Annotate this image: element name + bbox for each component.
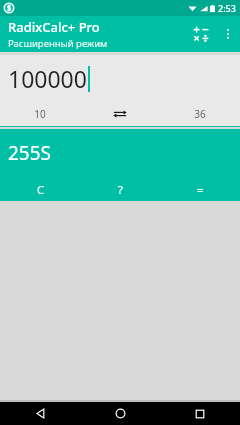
staticText: C [37, 182, 44, 197]
button[interactable]: 36 [160, 102, 240, 126]
button[interactable]: Home [80, 402, 160, 425]
button[interactable]: C [0, 177, 80, 201]
staticText: RadixCalc+ Pro [8, 18, 100, 36]
staticText: 100000 [8, 63, 87, 94]
button[interactable]: Recents [160, 402, 240, 425]
staticText: = [197, 182, 204, 197]
button[interactable]: Back [0, 402, 80, 425]
staticText: 255S [8, 140, 52, 166]
button[interactable]: 100000 [0, 55, 240, 102]
staticText: 36 [194, 107, 206, 121]
button[interactable]: More options [216, 22, 240, 46]
staticText: ? [118, 182, 123, 197]
button[interactable]: = [160, 177, 240, 201]
staticText: 10 [34, 107, 46, 121]
button[interactable]: 255S [0, 129, 240, 177]
button[interactable]: Operations [186, 19, 216, 49]
staticText: 2:53 [218, 2, 236, 14]
button[interactable]: Swap bases [80, 102, 160, 126]
button[interactable]: ? [80, 177, 160, 201]
staticText: Расширенный режим [8, 37, 108, 50]
button[interactable]: 10 [0, 102, 80, 126]
